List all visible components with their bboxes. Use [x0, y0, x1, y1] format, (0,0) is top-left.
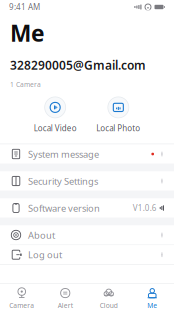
staticText: Local Photo — [96, 123, 140, 133]
staticText: Security Settings — [28, 175, 98, 187]
staticText: 328290005@Gmail.com — [10, 57, 146, 73]
staticText: Software version — [28, 202, 100, 214]
button[interactable]: Security Settings — [0, 171, 174, 190]
staticText: Camera — [9, 301, 34, 310]
button[interactable]: Alert — [43, 285, 87, 310]
staticText: Cloud — [100, 301, 118, 310]
staticText: V1.0.6 — [133, 203, 157, 213]
button[interactable]: Cloud — [87, 285, 130, 310]
staticText: Alert — [58, 301, 73, 310]
staticText: 1 Camera — [10, 80, 41, 89]
button[interactable]: System message — [0, 144, 174, 163]
button[interactable]: Log out — [0, 245, 174, 264]
staticText: About — [28, 229, 55, 241]
staticText: Log out — [28, 248, 62, 261]
button[interactable]: About — [0, 225, 174, 244]
staticText: Local Video — [34, 123, 77, 133]
staticText: Me — [10, 18, 45, 48]
staticText: 9:41 AM — [9, 2, 40, 12]
button[interactable]: Local Photo — [92, 95, 144, 135]
staticText: System message — [28, 148, 99, 160]
button[interactable]: Me — [130, 285, 174, 310]
button[interactable]: Local Video — [30, 95, 81, 135]
button[interactable]: Software version — [0, 198, 174, 217]
button[interactable]: Camera — [0, 285, 43, 310]
staticText: Me — [147, 301, 157, 310]
